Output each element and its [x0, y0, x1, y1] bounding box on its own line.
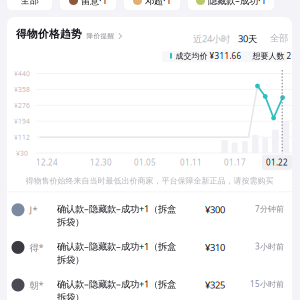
staticText: 得物价格趋势 [16, 27, 82, 41]
button[interactable]: 朝* [7, 268, 292, 300]
staticText: 01.05 [134, 157, 156, 168]
staticText: 拆袋） [57, 292, 84, 300]
staticText: 15小时前 [250, 279, 284, 289]
staticText: 得物售价始终来自当时最低出价商家，平台保障全新正品，请按需购买 [25, 176, 273, 186]
staticText: 全部 [270, 32, 288, 44]
staticText: 想要人数 2 [252, 50, 291, 61]
button[interactable]: 得* [7, 230, 292, 268]
staticText: 降价提醒 [86, 32, 114, 40]
staticText: 留意·1 [81, 0, 107, 7]
staticText: 确认款–隐藏款–成功+1（拆盒 [57, 278, 176, 290]
button[interactable]: 降价提醒 [86, 30, 121, 42]
staticText: ¥325 [205, 279, 225, 291]
button[interactable]: 近24小时 [192, 30, 231, 47]
staticText: 确认款–隐藏款–成功+1（拆盒 [57, 202, 176, 215]
staticText: ¥30 [16, 149, 28, 157]
button[interactable]: J* [7, 192, 292, 230]
button[interactable]: 隐藏款–成功·1 [188, 0, 274, 10]
staticText: ¥300 [205, 203, 225, 216]
staticText: 朝* [29, 279, 43, 291]
button[interactable]: 全部 [269, 30, 289, 46]
button[interactable]: 邓超·1 [124, 0, 180, 10]
staticText: 隐藏款–成功·1 [208, 0, 266, 7]
button[interactable]: 留意·1 [60, 0, 116, 10]
staticText: ¥440 [14, 69, 30, 78]
staticText: ¥358 [14, 85, 30, 94]
staticText: 01.22 [266, 157, 288, 168]
staticText: 12.24 [36, 157, 58, 168]
button[interactable]: 全部 [7, 0, 52, 10]
staticText: 拆袋） [57, 254, 84, 266]
staticText: 12.30 [90, 157, 112, 168]
button[interactable]: 30天 [237, 30, 258, 47]
staticText: 确认款–隐藏款–成功+1（拆盒 [57, 240, 176, 252]
staticText: 01.17 [224, 157, 246, 168]
staticText: ¥276 [14, 101, 30, 110]
staticText: 3小时前 [255, 241, 284, 252]
staticText: 全部 [20, 0, 38, 6]
staticText: 邓超·1 [145, 0, 171, 7]
staticText: J* [29, 204, 37, 216]
staticText: 成交均价 ¥311.66 [175, 50, 241, 61]
staticText: 得* [29, 241, 43, 254]
staticText: ¥310 [205, 241, 225, 253]
staticText: 01.11 [180, 157, 202, 168]
staticText: 拆袋） [57, 216, 84, 228]
staticText: 30天 [238, 32, 257, 45]
staticText: 7分钟前 [255, 203, 284, 214]
staticText: 近24小时 [193, 32, 230, 45]
staticText: ¥194 [14, 117, 30, 126]
staticText: ¥112 [14, 133, 30, 142]
